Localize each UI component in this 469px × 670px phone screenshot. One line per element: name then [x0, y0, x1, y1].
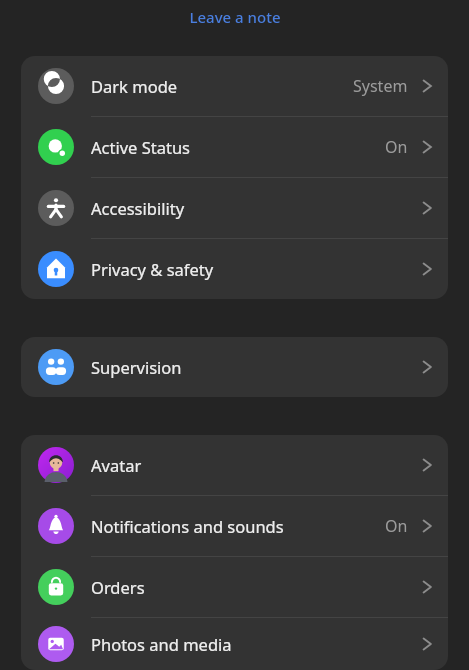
staticText: Notifications and sounds — [91, 515, 385, 537]
staticText: Dark mode — [91, 75, 353, 97]
button[interactable]: Supervision — [21, 337, 448, 397]
button[interactable]: Dark mode — [21, 56, 448, 116]
staticText: On — [385, 515, 408, 537]
button[interactable]: Accessibility — [21, 178, 448, 238]
button[interactable]: Avatar — [21, 435, 448, 495]
staticText: Privacy & safety — [91, 258, 421, 280]
staticText: Supervision — [91, 356, 421, 378]
staticText: Orders — [91, 576, 421, 598]
button[interactable]: Leave a note — [0, 4, 469, 30]
staticText: On — [385, 136, 408, 158]
button[interactable]: Orders — [21, 557, 448, 617]
button[interactable]: Privacy & safety — [21, 239, 448, 299]
staticText: Avatar — [91, 454, 421, 476]
staticText: Leave a note — [189, 7, 281, 27]
button[interactable]: Active Status — [21, 117, 448, 177]
button[interactable]: Notifications and sounds — [21, 496, 448, 556]
staticText: System — [353, 75, 408, 97]
staticText: Active Status — [91, 136, 385, 158]
staticText: Photos and media — [91, 633, 421, 655]
staticText: Accessibility — [91, 197, 421, 219]
button[interactable]: Photos and media — [21, 618, 448, 670]
